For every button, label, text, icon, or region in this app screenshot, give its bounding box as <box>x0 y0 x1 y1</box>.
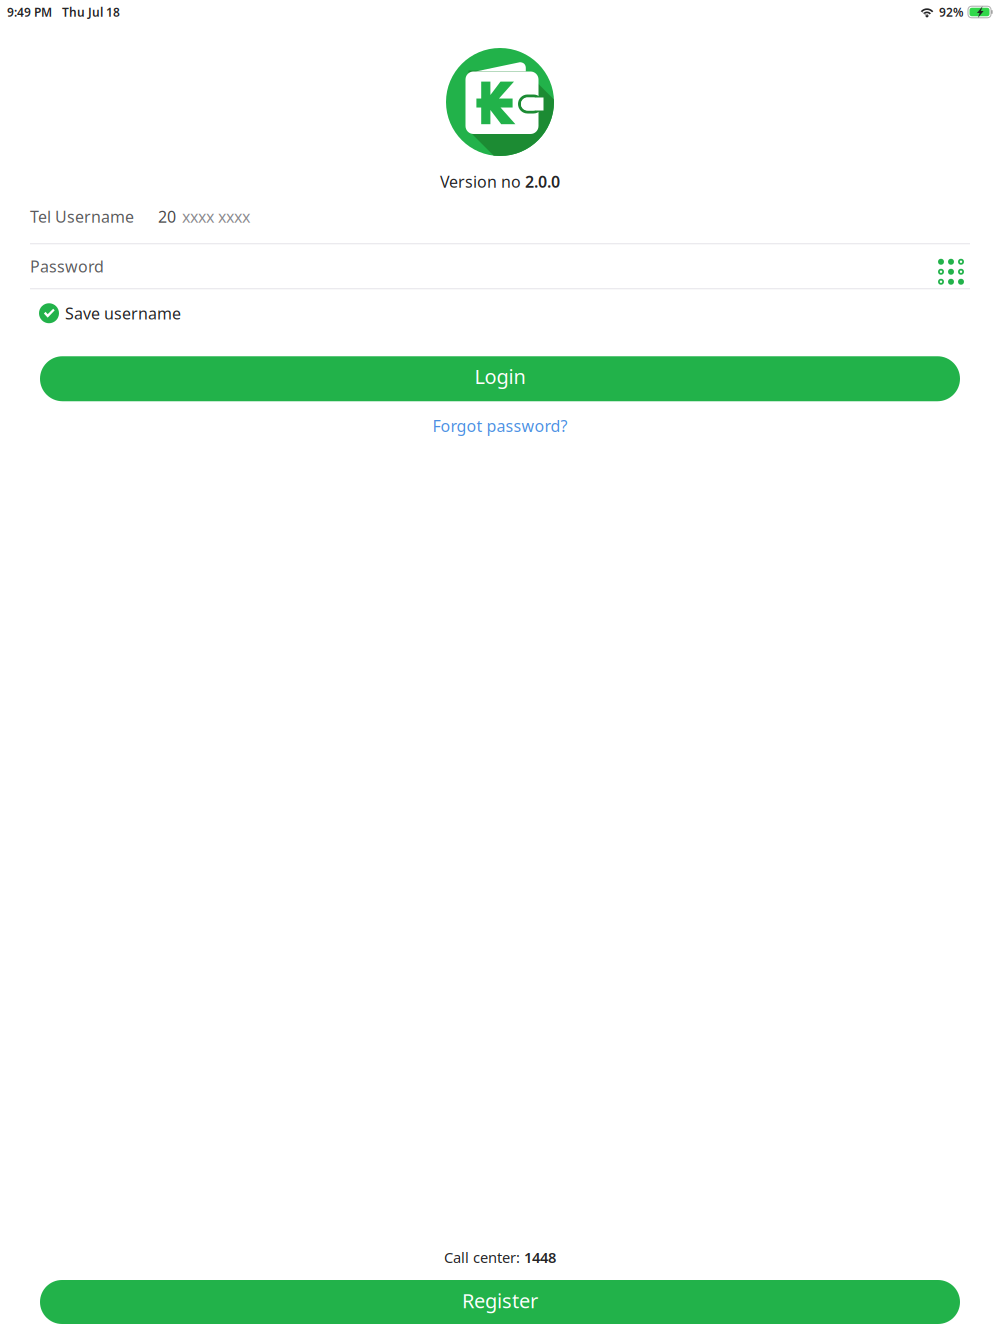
button[interactable]: Tel Username <box>30 211 970 243</box>
button[interactable]: Show keypad <box>938 248 970 285</box>
staticText: Version no 2.0.0 <box>440 171 560 192</box>
staticText: 92% <box>939 4 964 20</box>
staticText: xxxx xxxx <box>182 206 250 227</box>
staticText: Thu Jul 18 <box>62 4 120 20</box>
button[interactable]: Forgot password? <box>422 410 577 441</box>
button[interactable]: Save username <box>0 298 1000 328</box>
staticText: 20 <box>158 206 176 227</box>
button[interactable]: Register <box>40 1280 960 1324</box>
staticText: Password <box>30 256 104 277</box>
button[interactable]: Login <box>40 356 960 401</box>
staticText: Tel Username <box>30 206 134 227</box>
staticText: Register <box>462 1287 538 1314</box>
staticText: Call center: 1448 <box>444 1247 556 1267</box>
staticText: 9:49 PM <box>7 4 52 20</box>
button[interactable]: Password <box>30 244 938 288</box>
staticText: Forgot password? <box>432 415 567 436</box>
staticText: Save username <box>65 303 181 324</box>
staticText: Login <box>474 363 525 390</box>
